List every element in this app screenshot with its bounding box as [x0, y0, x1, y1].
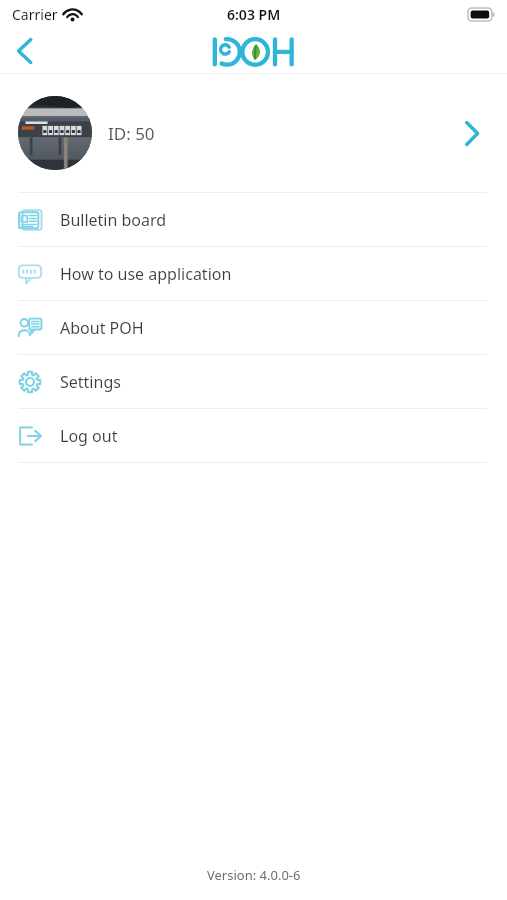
staticText: 6:03 PM — [227, 5, 281, 24]
button[interactable]: About POH — [0, 301, 507, 354]
staticText: About POH — [60, 317, 144, 339]
staticText: Settings — [60, 371, 121, 393]
button[interactable]: ID: 50 — [0, 74, 507, 192]
button[interactable]: Settings — [0, 355, 507, 408]
button[interactable]: Log out — [0, 409, 507, 462]
button[interactable]: Back — [0, 28, 48, 73]
button[interactable]: Bulletin board — [0, 193, 507, 246]
button[interactable]: How to use application — [0, 247, 507, 300]
staticText: ID: 50 — [108, 122, 155, 145]
staticText: Version: 4.0.0-6 — [207, 866, 301, 884]
staticText: Log out — [60, 425, 118, 447]
staticText: How to use application — [60, 263, 232, 285]
staticText: Bulletin board — [60, 209, 167, 231]
staticText: Carrier — [12, 5, 58, 24]
